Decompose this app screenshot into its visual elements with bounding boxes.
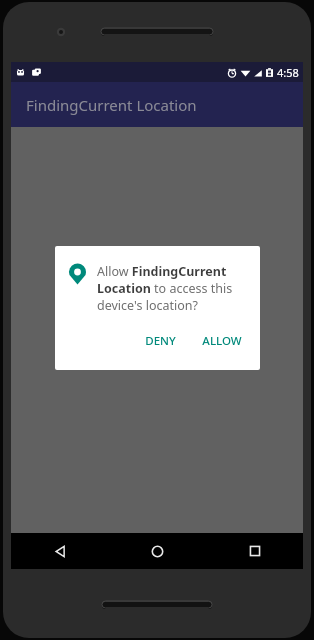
staticText: 4:58 [277,65,299,80]
button[interactable]: Home [109,533,206,569]
button[interactable]: ALLOW [192,326,252,356]
button[interactable]: Recent apps [206,533,303,569]
staticText: FindingCurrent Location [26,95,197,115]
staticText: DENY [145,333,176,349]
button[interactable]: DENY [135,326,186,356]
button[interactable]: Back [11,533,109,569]
staticText: ALLOW [202,333,242,349]
staticText: Allow FindingCurrent Location to access … [97,263,244,314]
